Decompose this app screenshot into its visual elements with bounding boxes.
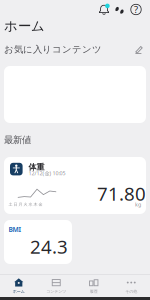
staticText: 土 日 月 火 水 木 金 [8,202,42,207]
staticText: 24.3 [30,234,68,259]
staticText: 履歴 [90,289,98,294]
button[interactable]: ホーム [0,274,37,297]
staticText: ? [134,3,138,16]
staticText: kg [135,201,141,208]
staticText: 最新値 [4,134,31,146]
button[interactable]: BMI [4,220,72,264]
staticText: 体重 [28,162,44,172]
staticText: その他 [125,289,137,294]
button[interactable]: 体重 [4,157,146,214]
staticText: BMI [8,225,21,234]
staticText: コンテンツ [46,289,66,294]
staticText: ホーム [13,289,25,294]
button[interactable]: ヘルプ [128,1,144,17]
button[interactable]: その他 [112,274,150,297]
button[interactable]: コンテンツ [37,274,75,297]
button[interactable]: お知らせ [96,1,112,17]
staticText: ホーム [4,18,45,34]
staticText: 71.80 [97,181,146,206]
button[interactable]: 歩数 [112,1,128,17]
staticText: 12/12(金) 10:05 [28,170,65,177]
staticText: お気に入りコンテンツ [4,44,102,55]
button[interactable]: 履歴 [75,274,112,297]
button[interactable]: 並び替え [133,43,145,55]
